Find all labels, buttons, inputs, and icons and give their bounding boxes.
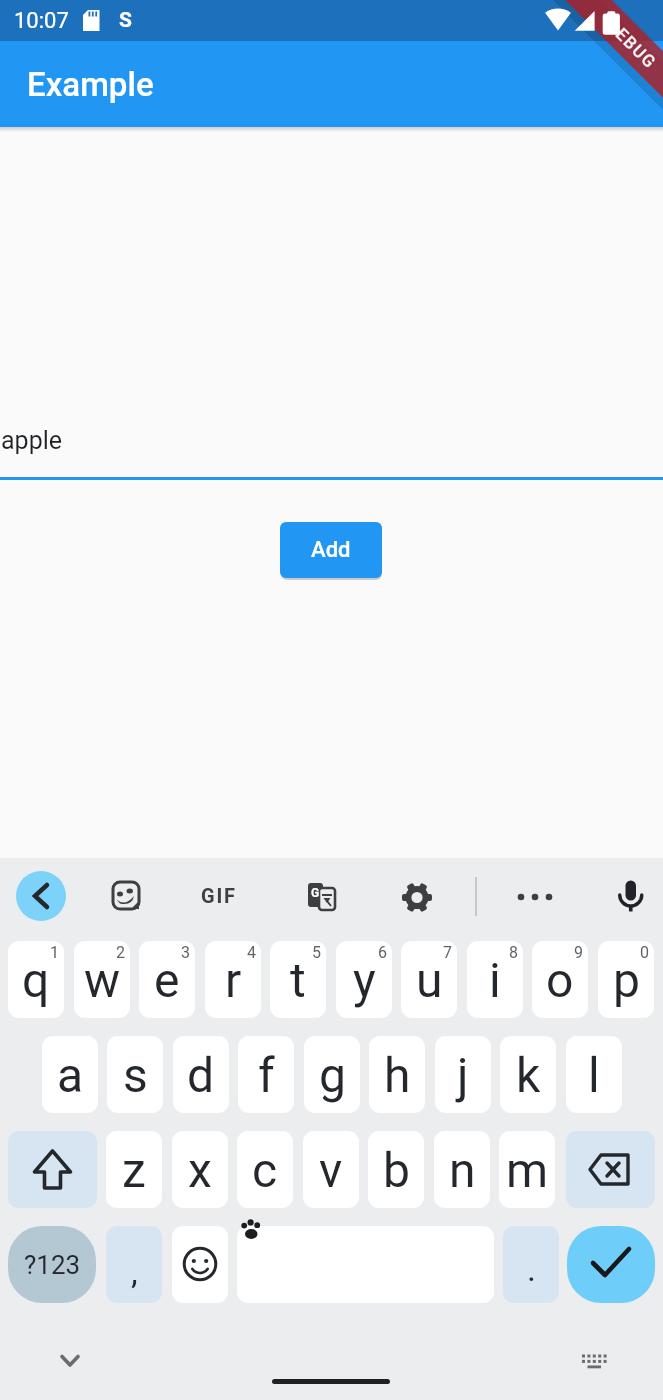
button[interactable]: Add [280,522,382,578]
staticText: DEBUG [603,15,661,73]
button[interactable]: f [238,1036,294,1113]
button[interactable]: k [500,1036,556,1113]
staticText: d [187,1047,215,1103]
staticText: i [489,952,501,1008]
button[interactable] [237,1226,494,1303]
button[interactable]: a [42,1036,98,1113]
staticText: 4 [247,943,256,962]
button[interactable] [513,874,557,918]
staticText: 2 [116,943,125,962]
button[interactable] [396,876,438,918]
staticText: 9 [574,943,583,962]
staticText: u [416,952,443,1008]
button[interactable] [567,1226,655,1303]
staticText: p [613,952,640,1008]
button[interactable] [8,1131,97,1208]
staticText: h [384,1047,411,1103]
staticText: s [123,1047,148,1103]
staticText: S [119,8,132,33]
staticText: G [311,886,320,900]
button[interactable]: x [172,1131,228,1208]
button[interactable] [609,874,653,918]
button[interactable]: c [237,1131,293,1208]
button[interactable]: GIF [200,880,246,914]
staticText: e [154,952,180,1008]
staticText: 5 [312,943,321,962]
button[interactable] [172,1226,228,1303]
button[interactable]: z [106,1131,162,1208]
button[interactable]: m [499,1131,555,1208]
button[interactable] [16,871,66,921]
staticText: Add [311,537,351,563]
staticText: w [84,952,121,1008]
button[interactable]: t [270,941,326,1018]
button[interactable]: q [8,941,64,1018]
staticText: 8 [509,943,518,962]
staticText: 1 [50,943,59,962]
staticText: 6 [378,943,387,962]
button[interactable]: , [106,1226,162,1303]
staticText: z [122,1142,146,1198]
staticText: o [546,952,574,1008]
button[interactable]: w [74,941,130,1018]
button[interactable] [570,1340,618,1376]
staticText: , [131,1252,138,1292]
button[interactable] [44,1340,92,1376]
button[interactable]: h [369,1036,425,1113]
staticText: k [516,1047,541,1103]
button[interactable]: n [434,1131,490,1208]
staticText: apple [1,426,63,455]
button[interactable]: g [304,1036,360,1113]
button[interactable]: ?123 [8,1226,96,1303]
staticText: y [353,952,376,1008]
staticText: a [57,1047,84,1103]
staticText: m [506,1142,549,1198]
button[interactable]: j [435,1036,491,1113]
staticText: 10:07 [14,8,69,34]
staticText: 0 [640,943,649,962]
staticText: ?123 [24,1250,81,1280]
button[interactable]: p [598,941,654,1018]
button[interactable]: u [401,941,457,1018]
staticText: GIF [201,884,237,907]
button[interactable]: i [467,941,523,1018]
staticText: l [588,1047,600,1103]
staticText: n [449,1142,476,1198]
staticText: 7 [443,943,452,962]
staticText: x [188,1142,212,1198]
staticText: v [319,1142,343,1198]
button[interactable]: l [566,1036,622,1113]
button[interactable]: . [503,1226,559,1303]
staticText: 3 [181,943,190,962]
button[interactable]: r [205,941,261,1018]
staticText: r [225,952,242,1008]
staticText: t [290,952,306,1008]
staticText: j [457,1047,469,1103]
button[interactable]: e [139,941,195,1018]
button[interactable]: v [303,1131,359,1208]
button[interactable]: s [107,1036,163,1113]
staticText: Example [27,65,154,104]
button[interactable]: o [532,941,588,1018]
staticText: q [22,952,50,1008]
staticText: . [527,1249,536,1289]
staticText: f [258,1047,275,1103]
button[interactable] [103,874,147,918]
staticText: c [252,1142,278,1198]
button[interactable]: y [336,941,392,1018]
staticText: g [319,1047,346,1103]
staticText: b [383,1142,410,1198]
button[interactable]: G [300,876,342,918]
button[interactable]: b [368,1131,424,1208]
button[interactable]: d [173,1036,229,1113]
button[interactable] [566,1131,655,1208]
